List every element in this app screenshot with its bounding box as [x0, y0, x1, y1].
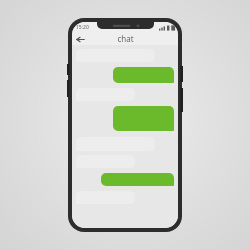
button[interactable]: [113, 67, 174, 83]
button[interactable]: [101, 173, 174, 186]
staticText: 15:20: [76, 24, 89, 31]
button[interactable]: Back: [74, 33, 86, 45]
staticText: chat: [117, 33, 134, 44]
button[interactable]: [113, 106, 174, 131]
